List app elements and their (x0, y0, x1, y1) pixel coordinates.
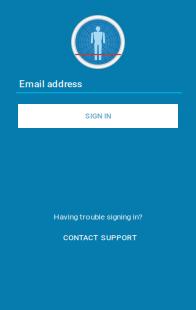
staticText: Having trouble signing in? (53, 212, 142, 221)
staticText: SIGN IN (85, 112, 111, 120)
button[interactable]: SIGN IN (18, 104, 178, 128)
staticText: CONTACT SUPPORT (63, 233, 137, 242)
button[interactable]: CONTACT SUPPORT (2, 231, 196, 244)
staticText: Email address (19, 78, 82, 90)
